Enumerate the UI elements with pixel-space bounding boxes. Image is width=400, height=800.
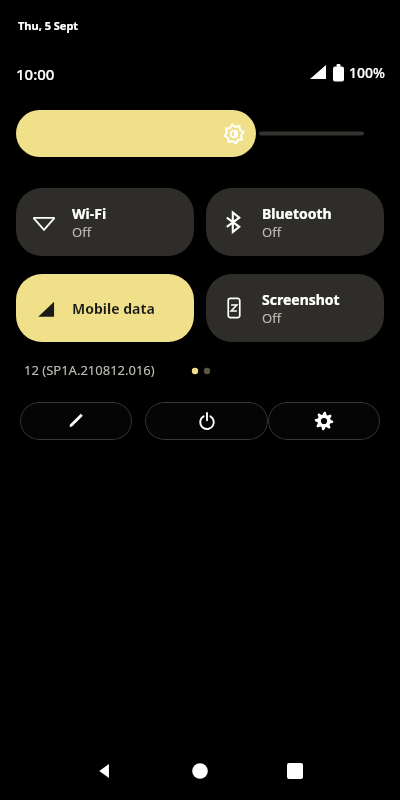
staticText: 12 (SP1A.210812.016) — [24, 361, 155, 379]
staticText: Off — [262, 309, 282, 327]
button[interactable]: Settings — [268, 402, 380, 440]
button[interactable]: Bluetooth — [206, 188, 384, 256]
button[interactable]: Wi-Fi — [16, 188, 194, 256]
staticText: 10:00 — [16, 64, 55, 84]
staticText: 100% — [349, 63, 385, 82]
button[interactable]: Home — [180, 742, 220, 800]
staticText: Mobile data — [72, 299, 155, 318]
staticText: Thu, 5 Sept — [18, 18, 79, 33]
staticText: Off — [262, 223, 282, 241]
staticText: Bluetooth — [262, 204, 332, 223]
button[interactable]: Screenshot — [206, 274, 384, 342]
button[interactable]: Back — [85, 742, 125, 800]
button[interactable]: Brightness — [16, 110, 384, 157]
staticText: Wi-Fi — [72, 204, 107, 223]
button[interactable]: Edit — [20, 402, 132, 440]
staticText: Off — [72, 223, 92, 241]
button[interactable]: Mobile data — [16, 274, 194, 342]
staticText: Screenshot — [262, 290, 340, 309]
button[interactable]: Power — [145, 402, 268, 440]
button[interactable]: Recents — [275, 742, 315, 800]
